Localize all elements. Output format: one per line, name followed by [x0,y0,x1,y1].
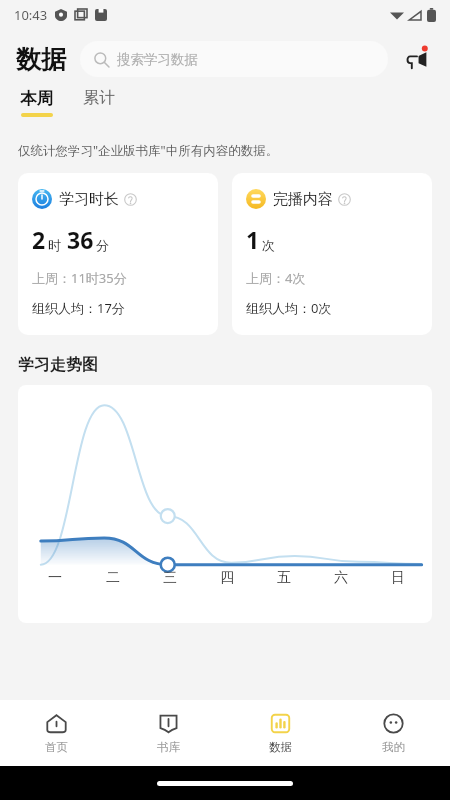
staticText: 数据 [269,740,292,754]
staticText: 四 [220,569,234,587]
other: Help [124,193,137,206]
staticText: 36 [67,224,94,255]
staticText: 本周 [20,88,53,109]
staticText: 二 [106,569,120,587]
staticText: 五 [277,569,291,587]
staticText: 数据 [16,44,66,75]
staticText: 学习走势图 [18,355,98,375]
staticText: 组织人均：0次 [246,299,332,317]
staticText: 我的 [382,740,405,754]
button[interactable]: 数据 [224,700,337,766]
staticText: 上周：11时35分 [32,269,127,287]
staticText: 搜索学习数据 [117,51,198,68]
staticText: 10:43 [14,6,48,24]
staticText: 累计 [83,88,115,108]
button[interactable]: 一 [18,385,432,623]
button[interactable]: 完播内容 [232,173,432,335]
staticText: 时 [48,237,61,253]
staticText: 分 [96,237,109,253]
staticText: 组织人均：17分 [32,299,125,317]
button[interactable]: 搜索学习数据 [80,41,388,77]
button[interactable]: 本周 [18,88,55,117]
staticText: 首页 [45,740,68,754]
button[interactable]: 我的 [337,700,450,766]
staticText: 上周：4次 [246,269,306,287]
button[interactable]: 学习时长 [18,173,218,335]
button[interactable]: 书库 [112,700,224,766]
staticText: 日 [391,569,405,587]
staticText: 2 [32,224,46,255]
staticText: 1 [246,224,260,255]
button[interactable]: 首页 [0,700,112,766]
staticText: 书库 [157,740,180,754]
staticText: 完播内容 [273,190,333,209]
other: Help [338,193,351,206]
staticText: 学习时长 [59,190,119,209]
staticText: 仅统计您学习"企业版书库"中所有内容的数据。 [18,142,279,159]
button[interactable]: Announcements [400,42,434,76]
button[interactable]: 累计 [81,88,117,108]
staticText: 一 [48,569,62,587]
staticText: 次 [262,237,275,253]
staticText: 六 [334,569,348,587]
staticText: 三 [163,569,177,587]
